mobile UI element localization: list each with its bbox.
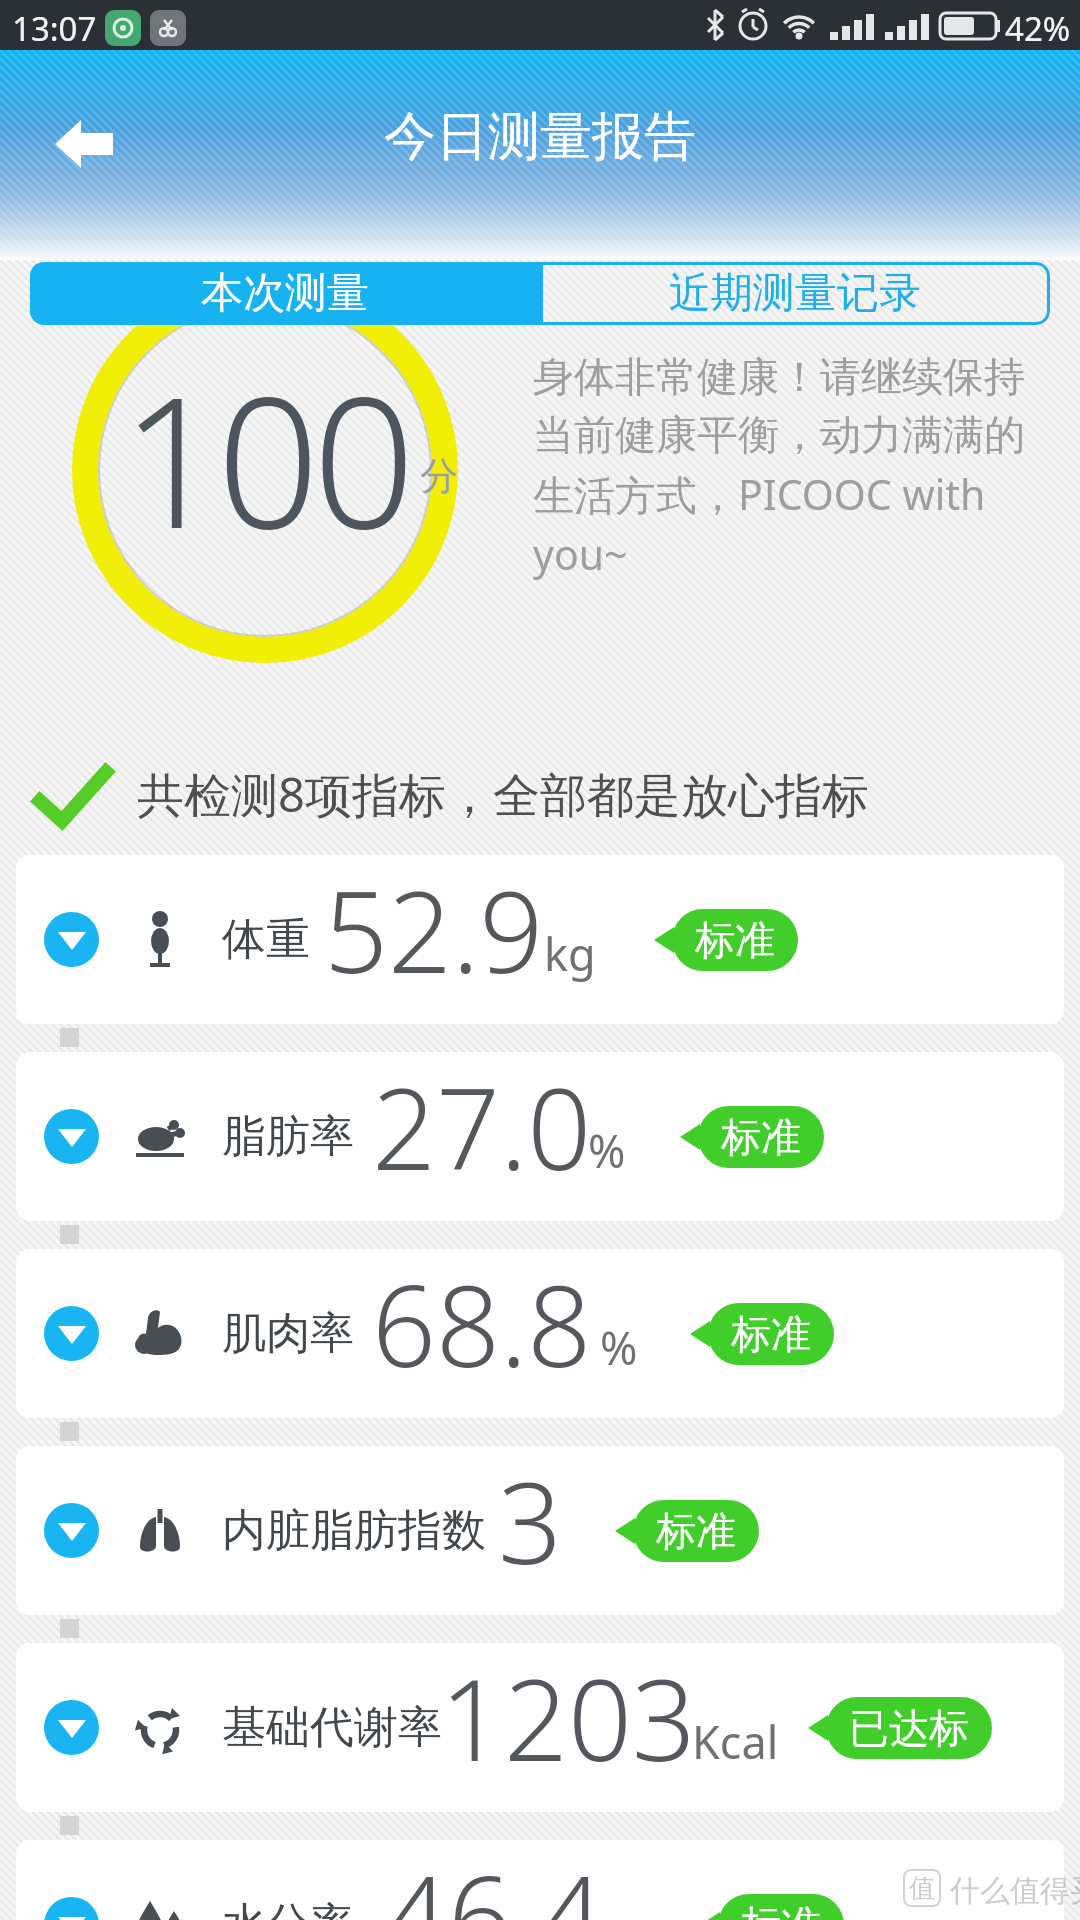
button[interactable]: 水分率	[16, 1840, 1064, 1920]
staticText: 近期测量记录	[669, 267, 921, 320]
button[interactable]	[55, 120, 113, 168]
button[interactable]: 已达标	[826, 1697, 992, 1759]
staticText: 42%	[1005, 6, 1071, 51]
button[interactable]: 内脏脂肪指数	[16, 1446, 1064, 1615]
staticText: 3	[498, 1446, 562, 1597]
staticText: 52.9	[324, 855, 544, 1006]
button[interactable]: 标准	[672, 909, 798, 971]
staticText: 68.8	[372, 1249, 592, 1400]
staticText: 46.4	[384, 1840, 604, 1920]
staticText: 27.0	[372, 1052, 592, 1203]
staticText: %	[588, 1120, 626, 1181]
staticText: 本次测量	[201, 267, 369, 320]
button[interactable]: 基础代谢率	[16, 1643, 1064, 1812]
staticText: 今日测量报告	[0, 104, 1080, 170]
staticText: 已达标	[849, 1703, 969, 1753]
staticText: Kcal	[692, 1711, 779, 1772]
staticText: 标准	[656, 1506, 736, 1556]
staticText: 基础代谢率	[222, 1700, 442, 1755]
staticText: 1203	[440, 1643, 696, 1794]
button[interactable]: 标准	[698, 1106, 824, 1168]
staticText: 身体非常健康！请继续保持 当前健康平衡，动力满满的 生活方式，PICOOC wi…	[533, 352, 1053, 582]
staticText: 水分率	[222, 1897, 354, 1920]
staticText: 内脏脂肪指数	[222, 1503, 486, 1558]
staticText: %	[600, 1317, 638, 1378]
button[interactable]: 近期测量记录	[540, 262, 1050, 325]
button[interactable]: 体重	[16, 855, 1064, 1024]
staticText: kg	[544, 923, 596, 984]
staticText: 标准	[695, 915, 775, 965]
staticText: 标准	[731, 1309, 811, 1359]
staticText: 13:07	[12, 6, 97, 51]
button[interactable]: 标准	[633, 1500, 759, 1562]
staticText: 肌肉率	[222, 1306, 354, 1361]
button[interactable]: 肌肉率	[16, 1249, 1064, 1418]
staticText: 标准	[741, 1900, 821, 1920]
staticText: 标准	[721, 1112, 801, 1162]
button[interactable]: 本次测量	[30, 262, 540, 325]
staticText: 共检测8项指标，全部都是放心指标	[137, 762, 869, 826]
staticText: 100	[121, 336, 409, 581]
staticText: 脂肪率	[222, 1109, 354, 1164]
button[interactable]: 标准	[718, 1894, 844, 1920]
button[interactable]: 脂肪率	[16, 1052, 1064, 1221]
staticText: 什么值得买	[950, 1872, 1080, 1910]
staticText: 分	[420, 452, 458, 500]
staticText: 体重	[222, 912, 310, 967]
button[interactable]: 标准	[708, 1303, 834, 1365]
staticText: 值	[909, 1872, 935, 1905]
